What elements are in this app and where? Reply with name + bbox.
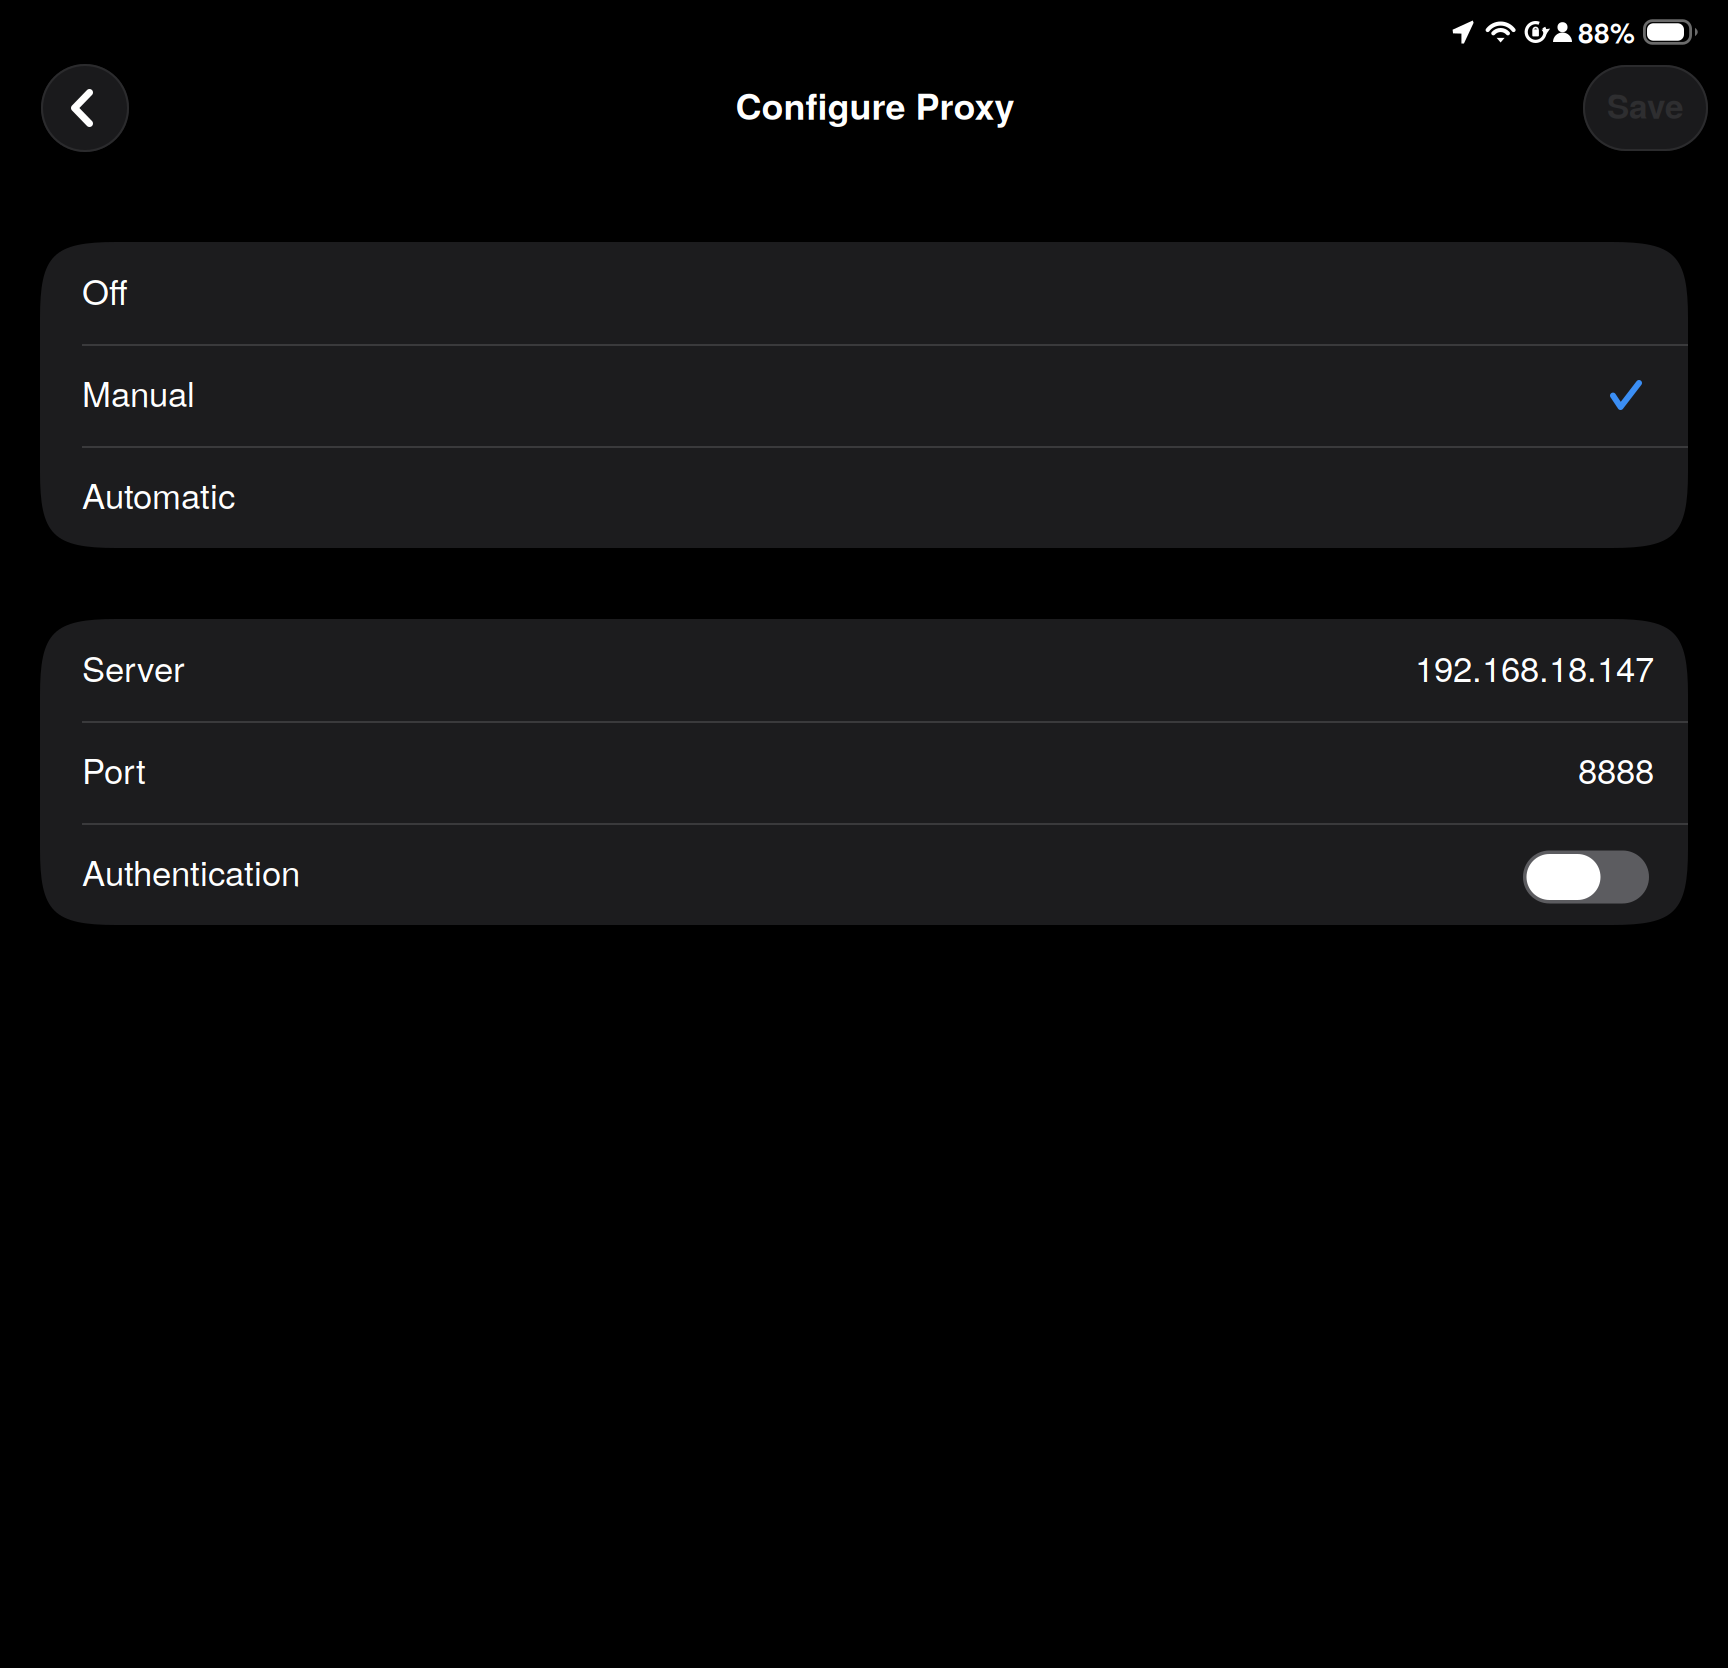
staticText: 192.168.18.147 [1415, 642, 1654, 692]
staticText: Manual [82, 367, 195, 417]
staticText: Authentication [82, 846, 300, 896]
button[interactable]: Off [40, 242, 1688, 344]
staticText: Save [1607, 81, 1684, 129]
button[interactable]: Server [40, 619, 1688, 721]
staticText: Automatic [82, 469, 235, 519]
staticText: Port [82, 744, 146, 794]
button[interactable]: Port [40, 721, 1688, 823]
button[interactable]: Back [41, 64, 129, 152]
staticText: Server [82, 642, 185, 692]
button[interactable]: Manual [40, 344, 1688, 446]
button[interactable]: Automatic [40, 446, 1688, 548]
staticText: Off [82, 265, 128, 315]
button[interactable]: Authentication [1523, 850, 1649, 903]
staticText: 8888 [1578, 744, 1654, 794]
staticText: Configure Proxy [735, 79, 1014, 131]
button[interactable]: Save [1583, 65, 1708, 151]
staticText: 88% [1578, 12, 1635, 52]
